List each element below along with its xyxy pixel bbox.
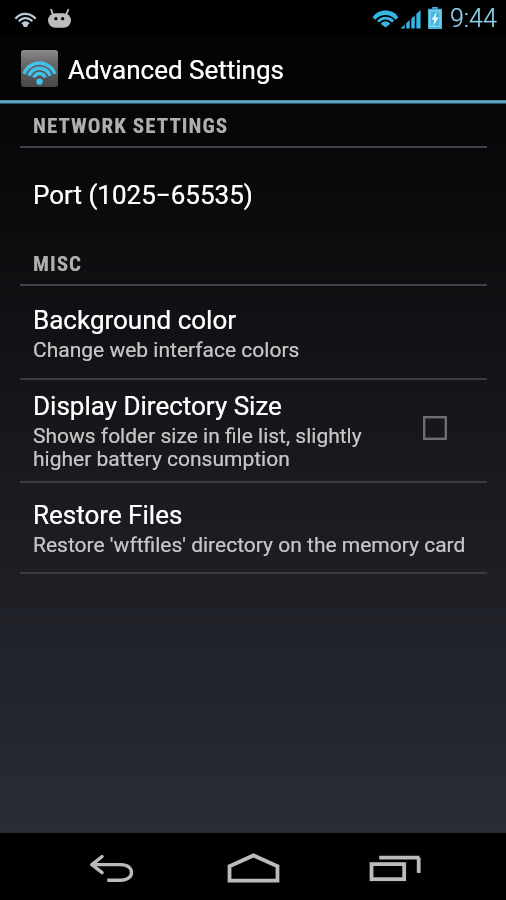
staticText: Port (1025−65535) [33, 180, 253, 210]
button[interactable]: Back [0, 833, 182, 900]
staticText: Restore 'wftfiles' directory on the memo… [33, 533, 466, 558]
button[interactable]: Recent apps [324, 833, 506, 900]
staticText: NETWORK SETTINGS [33, 114, 229, 139]
button[interactable]: Home [182, 833, 324, 900]
staticText: Change web interface colors [33, 338, 300, 363]
staticText: Shows folder size in file list, slightly… [33, 424, 362, 471]
staticText: Background color [33, 305, 237, 335]
staticText: Advanced Settings [68, 55, 284, 85]
staticText: Restore Files [33, 500, 183, 530]
button[interactable]: Display Directory Size [0, 380, 506, 481]
button[interactable]: Restore Files [0, 483, 506, 572]
staticText: 9:44 [450, 4, 497, 33]
staticText: Display Directory Size [33, 391, 282, 421]
button[interactable]: Advanced Settings [0, 37, 506, 100]
button[interactable]: Background color [0, 286, 506, 378]
staticText: MISC [33, 252, 83, 277]
button[interactable]: Port (1025−65535) [0, 148, 506, 210]
